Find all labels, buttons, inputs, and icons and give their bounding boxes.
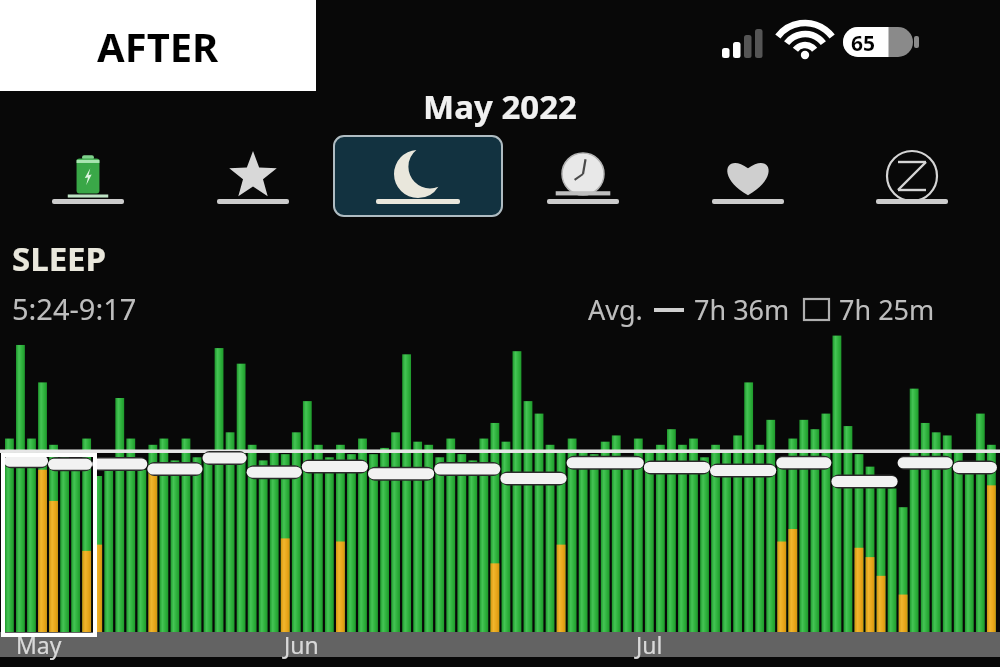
button[interactable]: Sleep mode	[857, 140, 967, 212]
staticText: 5:24-9:17	[12, 289, 137, 328]
staticText: SLEEP	[12, 236, 107, 281]
staticText: May	[16, 629, 62, 660]
staticText: Jul	[636, 629, 663, 660]
button[interactable]: Favorites	[198, 140, 308, 212]
staticText: 7h 36m	[694, 291, 790, 328]
staticText: May 2022	[423, 84, 577, 129]
staticText: AFTER	[97, 19, 219, 73]
staticText: 7h 25m	[839, 291, 935, 328]
staticText: 65	[851, 29, 876, 58]
staticText: Avg.	[588, 291, 643, 328]
button[interactable]: Heart rate	[693, 140, 803, 212]
button[interactable]: Sleep	[334, 136, 502, 216]
staticText: Jun	[284, 629, 319, 660]
button[interactable]: Energy	[33, 140, 143, 212]
button[interactable]: Time	[528, 140, 638, 212]
